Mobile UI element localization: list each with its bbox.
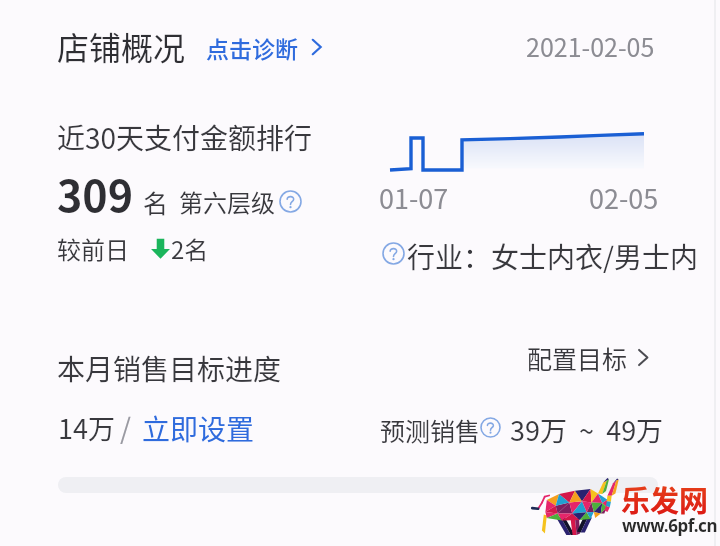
staticText: 02-05 (589, 178, 659, 217)
staticText: 01-07 (379, 178, 449, 217)
staticText: 第六层级 (179, 184, 275, 219)
button[interactable]: 店铺概况 (57, 23, 186, 69)
staticText: 近30天支付金额排行 (57, 117, 313, 158)
staticText: 2名 (171, 231, 209, 266)
staticText: 名 (143, 184, 169, 220)
staticText: 立即设置 (142, 408, 255, 449)
staticText: 配置目标 (527, 340, 628, 376)
button[interactable]: 预测销售说明 (480, 417, 501, 438)
staticText: 较前日 (57, 231, 129, 266)
staticText: 点击诊断 (206, 31, 298, 64)
button[interactable]: 点击诊断 (206, 31, 325, 64)
button[interactable]: 配置目标 (527, 340, 652, 376)
staticText: 14万 (58, 408, 115, 447)
staticText: 店铺概况 (57, 23, 186, 69)
staticText: 2021-02-05 (526, 28, 655, 64)
button[interactable]: 立即设置 (142, 408, 255, 449)
staticText: 行业：女士内衣/男士内 (407, 236, 698, 277)
staticText: 乐发网 (621, 478, 709, 520)
staticText: 39万 ~ 49万 (510, 410, 664, 449)
button[interactable]: 层级说明 (279, 190, 302, 213)
staticText: / (120, 407, 131, 448)
button[interactable]: 行业说明 (382, 242, 405, 265)
staticText: 预测销售 (380, 412, 481, 448)
staticText: 本月销售目标进度 (57, 348, 282, 389)
staticText: www.6pf.cn (622, 514, 718, 537)
staticText: 309 (57, 162, 134, 224)
